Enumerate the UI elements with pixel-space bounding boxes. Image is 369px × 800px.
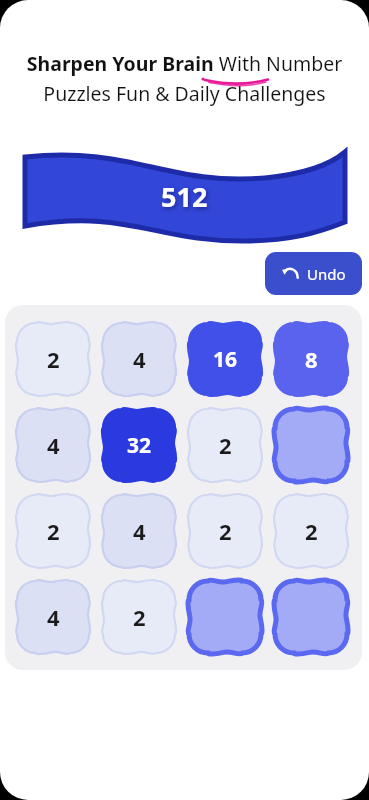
staticText: 4 xyxy=(133,516,146,546)
button[interactable]: 4 xyxy=(14,578,92,656)
staticText: 2 xyxy=(305,516,318,546)
staticText: 4 xyxy=(133,344,146,374)
staticText: 2 xyxy=(219,516,232,546)
staticText: 4 xyxy=(47,430,60,460)
button[interactable]: Undo xyxy=(265,252,362,295)
button[interactable]: 4 xyxy=(100,492,178,570)
staticText: Sharpen Your Brain With Number Puzzles F… xyxy=(10,50,359,106)
staticText: Undo xyxy=(307,264,346,284)
staticText: 2 xyxy=(47,344,60,374)
staticText: 512 xyxy=(161,178,208,215)
button[interactable]: 32 xyxy=(100,406,178,484)
button[interactable]: 8 xyxy=(272,320,350,398)
button[interactable]: 4 xyxy=(14,406,92,484)
staticText: 16 xyxy=(213,345,238,374)
button[interactable]: 2 xyxy=(186,492,264,570)
button[interactable] xyxy=(272,578,350,656)
button[interactable]: 2 xyxy=(100,578,178,656)
staticText: 2 xyxy=(133,602,146,632)
button[interactable]: 2 xyxy=(14,320,92,398)
staticText: 32 xyxy=(127,431,152,460)
staticText: 2 xyxy=(47,516,60,546)
button[interactable] xyxy=(272,406,350,484)
button[interactable]: 2 xyxy=(272,492,350,570)
button[interactable]: 16 xyxy=(186,320,264,398)
button[interactable]: 2 xyxy=(186,406,264,484)
staticText: 4 xyxy=(47,602,60,632)
button[interactable]: 4 xyxy=(100,320,178,398)
button[interactable]: 2 xyxy=(14,492,92,570)
button[interactable] xyxy=(186,578,264,656)
staticText: 8 xyxy=(305,344,318,374)
staticText: 2 xyxy=(219,430,232,460)
